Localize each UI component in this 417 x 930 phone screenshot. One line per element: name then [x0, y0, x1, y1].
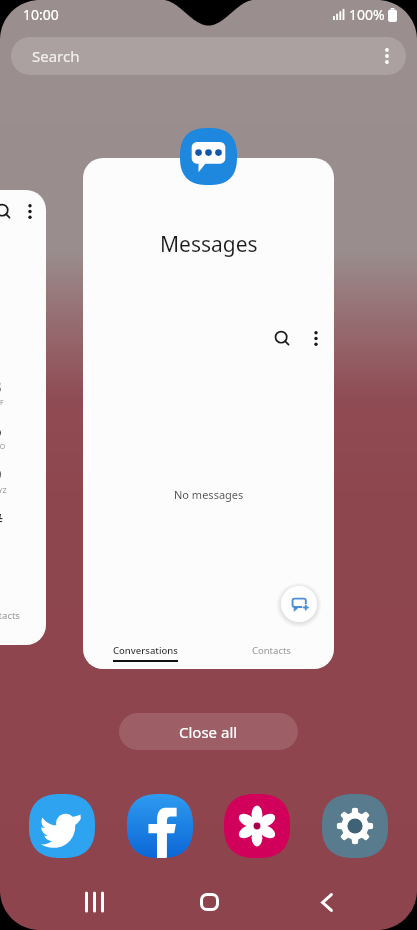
staticText: 100%	[349, 5, 385, 24]
button[interactable]: Gallery	[224, 794, 290, 858]
button[interactable]: Close all	[119, 713, 298, 750]
staticText: #	[0, 508, 3, 531]
button[interactable]: Contacts	[208, 636, 334, 669]
staticText: Contacts	[252, 644, 291, 657]
button[interactable]: New conversation	[277, 582, 321, 626]
button[interactable]: Messages	[83, 158, 334, 669]
staticText: 9	[0, 463, 2, 486]
button[interactable]: Facebook	[127, 794, 193, 858]
staticText: Search	[32, 46, 80, 66]
button[interactable]: 3	[0, 190, 46, 645]
staticText: 10:00	[23, 5, 59, 24]
staticText: Contacts	[0, 609, 20, 622]
button[interactable]: Back	[297, 878, 357, 926]
button[interactable]: Search	[11, 37, 406, 75]
staticText: 3	[0, 375, 2, 398]
button[interactable]: Settings	[322, 794, 388, 858]
button[interactable]: Recents	[64, 878, 124, 926]
staticText: 6	[0, 419, 2, 442]
staticText: Close all	[179, 722, 238, 742]
button[interactable]: Home	[179, 878, 239, 926]
staticText: MNO	[0, 442, 6, 452]
button[interactable]: Conversations	[83, 636, 208, 669]
button[interactable]: More options	[368, 37, 406, 75]
staticText: No messages	[174, 487, 244, 502]
staticText: Conversations	[113, 644, 178, 657]
staticText: WXYZ	[0, 486, 7, 496]
button[interactable]: Search	[269, 325, 295, 351]
staticText: DEF	[0, 398, 4, 408]
button[interactable]: Twitter	[29, 794, 95, 858]
button[interactable]: More options	[303, 325, 329, 351]
staticText: Messages	[160, 230, 258, 259]
